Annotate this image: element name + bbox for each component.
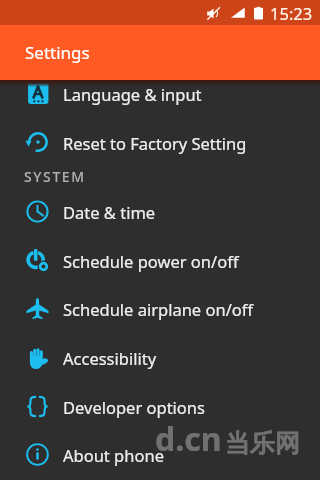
staticText: 15:23 [270, 2, 313, 24]
staticText: SYSTEM [24, 167, 86, 186]
staticText: Schedule airplane on/off [63, 298, 254, 320]
other: Ringer silenced [206, 6, 221, 21]
button[interactable]: Reset to Factory Setting [0, 118, 320, 167]
button[interactable]: About phone [0, 430, 320, 479]
staticText: About phone [63, 444, 164, 466]
button[interactable]: Schedule power on/off [0, 236, 320, 285]
button[interactable]: Schedule airplane on/off [0, 284, 320, 333]
button[interactable]: Date & time [0, 187, 320, 236]
staticText: Accessibility [63, 347, 157, 369]
staticText: Developer options [63, 396, 205, 418]
staticText: Language & input [63, 83, 202, 105]
button[interactable]: Accessibility [0, 333, 320, 382]
staticText: Date & time [63, 201, 156, 223]
staticText: Settings [25, 41, 90, 64]
staticText: d.cn [155, 417, 222, 461]
other: Battery [254, 6, 263, 21]
staticText: Reset to Factory Setting [63, 132, 247, 154]
staticText: Schedule power on/off [63, 250, 239, 272]
button[interactable]: Language & input [0, 69, 320, 118]
staticText: 当乐网 [225, 428, 300, 459]
other: Mobile signal [230, 5, 246, 21]
button[interactable]: Developer options [0, 382, 320, 431]
